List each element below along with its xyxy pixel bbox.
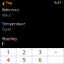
button[interactable]: 2	[16, 49, 32, 56]
staticText: 2	[23, 49, 26, 56]
button[interactable]: 3	[32, 49, 47, 56]
button[interactable]: 5	[16, 56, 32, 63]
staticText: −	[54, 49, 57, 56]
staticText: 486.0	[2, 12, 11, 18]
staticText: 5	[23, 56, 26, 63]
staticText: Tag	[6, 0, 12, 5]
staticText: 4	[7, 56, 10, 63]
staticText: 6	[38, 56, 41, 63]
staticText: Equal	[2, 26, 11, 32]
staticText: 9:41	[54, 0, 61, 5]
staticText: 0	[2, 41, 4, 47]
button[interactable]: 1	[1, 49, 16, 56]
staticText: 1	[7, 49, 10, 56]
staticText	[55, 56, 56, 63]
staticText: Temperature	[2, 21, 25, 26]
button[interactable]: Read Key	[0, 36, 64, 47]
staticText: Read Key	[2, 36, 17, 41]
button[interactable]: −	[48, 49, 63, 56]
button[interactable]: Temperature	[0, 21, 64, 32]
staticText: 3	[38, 49, 41, 56]
button[interactable]	[48, 56, 63, 63]
button[interactable]: Reference	[0, 7, 64, 18]
button[interactable]: 6	[32, 56, 47, 63]
button[interactable]: 4	[1, 56, 16, 63]
button[interactable]: Back	[2, 0, 12, 5]
staticText: Reference	[2, 7, 19, 12]
